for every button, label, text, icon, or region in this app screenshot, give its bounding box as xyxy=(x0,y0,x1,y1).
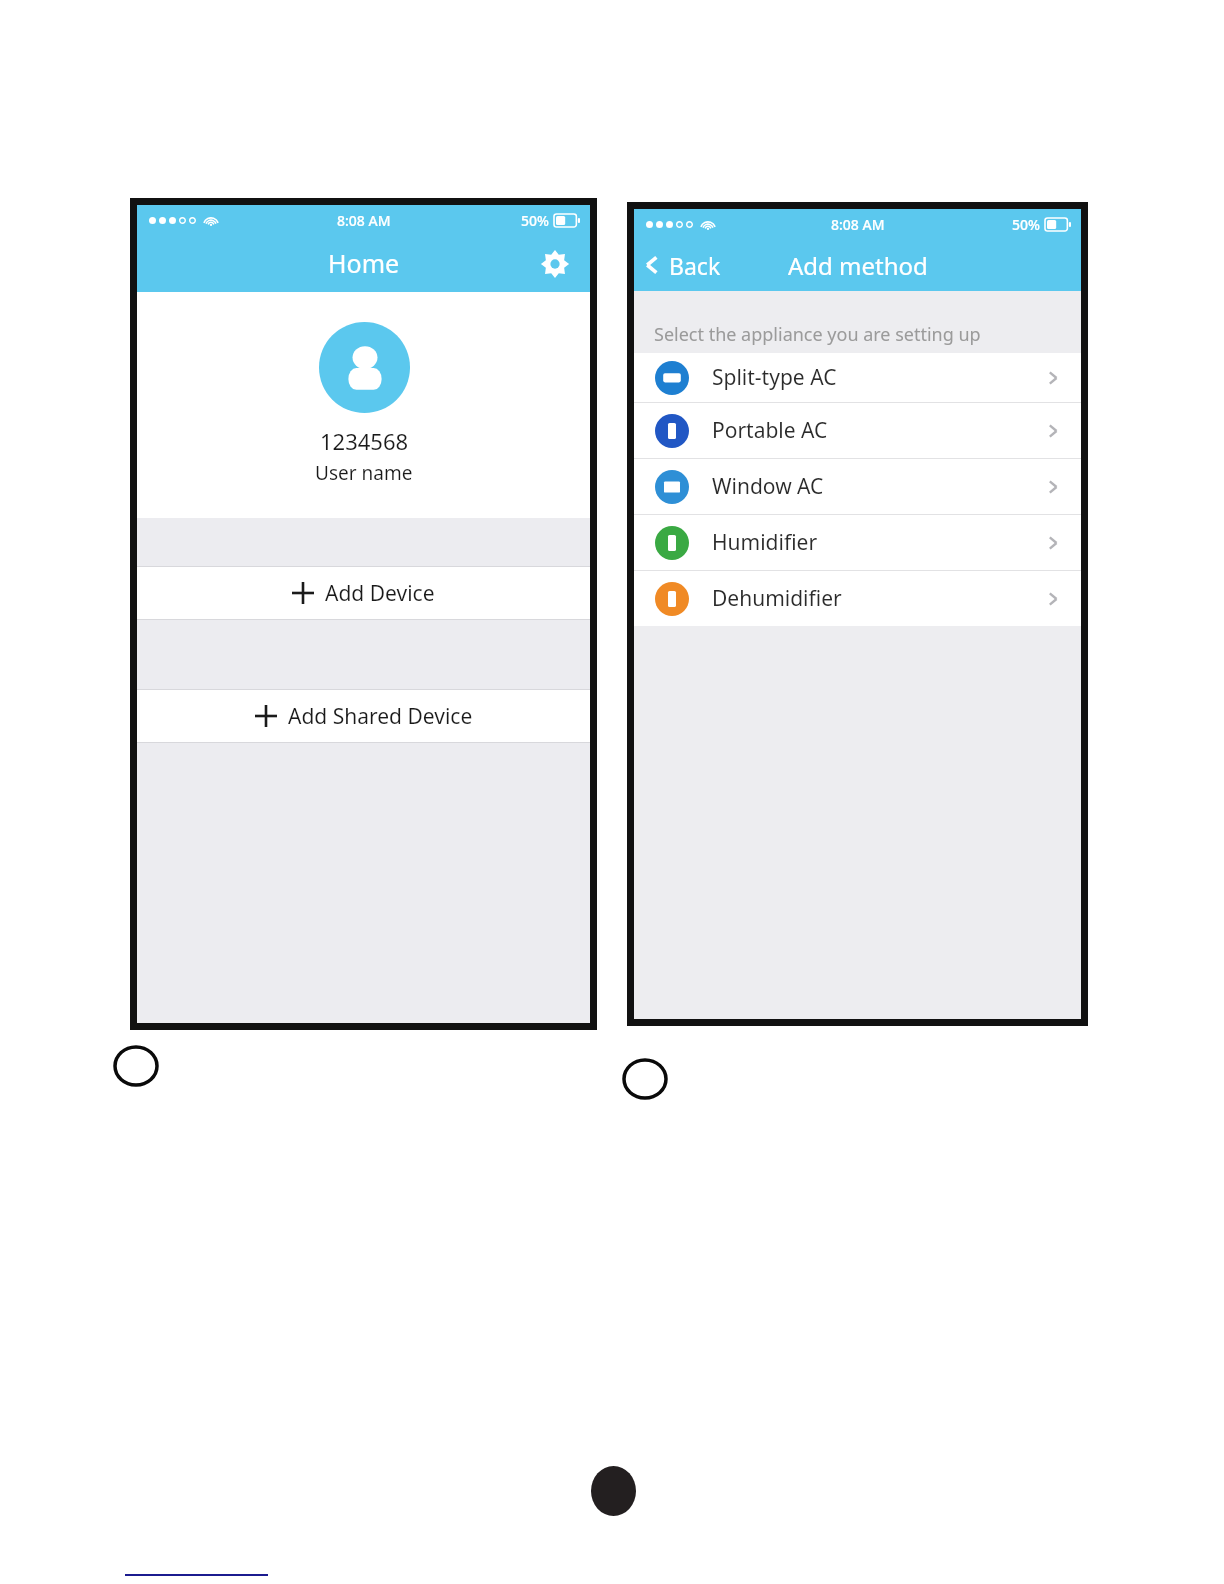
staticText: Add Device xyxy=(325,579,435,608)
button[interactable]: Dehumidifier xyxy=(634,571,1081,626)
button[interactable]: Back xyxy=(642,242,721,288)
staticText: 50% xyxy=(521,211,549,230)
staticText: Portable AC xyxy=(712,416,828,445)
staticText: Select the appliance you are setting up xyxy=(654,322,981,347)
button[interactable]: Settings xyxy=(534,243,576,285)
button[interactable]: Humidifier xyxy=(634,515,1081,570)
staticText: Humidifier xyxy=(712,528,818,557)
staticText: 50% xyxy=(1012,215,1040,234)
staticText: 8:08 AM xyxy=(337,211,391,230)
staticText: Back xyxy=(669,250,721,281)
button[interactable]: Split-type AC xyxy=(634,353,1081,402)
button[interactable]: Add Shared Device xyxy=(137,690,590,742)
staticText: Home xyxy=(328,246,400,280)
button[interactable]: Add Device xyxy=(137,567,590,619)
staticText: Split-type AC xyxy=(712,363,837,392)
staticText: 8:08 AM xyxy=(831,215,885,234)
staticText: Window AC xyxy=(712,472,824,501)
staticText: Add Shared Device xyxy=(288,702,473,731)
button[interactable]: Window AC xyxy=(634,459,1081,514)
staticText: 1234568 xyxy=(320,426,409,456)
button[interactable]: Portable AC xyxy=(634,403,1081,458)
staticText: Dehumidifier xyxy=(712,584,842,613)
staticText: User name xyxy=(315,460,413,486)
staticText: Add method xyxy=(788,249,928,282)
